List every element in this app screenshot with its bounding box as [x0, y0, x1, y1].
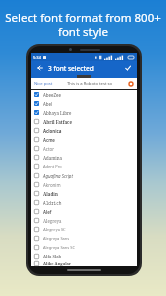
staticText: Alegreya SC — [43, 227, 66, 232]
staticText: Alef — [43, 209, 52, 215]
button[interactable]: AbeeZee — [31, 90, 137, 99]
staticText: Aclonica — [43, 128, 62, 134]
button[interactable]: Abhaya Libre — [31, 108, 137, 117]
staticText: Select font format from 800+ font style — [4, 10, 162, 39]
button[interactable]: Done — [123, 63, 133, 73]
button[interactable]: Alegreya — [31, 216, 137, 225]
button[interactable]: Aldrich — [31, 198, 137, 207]
staticText: Alegreya Sans SC — [43, 245, 75, 250]
staticText: This is a Roboto test so — [67, 81, 113, 87]
staticText: Abel — [43, 101, 53, 107]
staticText: 3 font selected — [48, 64, 94, 73]
staticText: Acme — [43, 137, 55, 143]
staticText: Alegreya — [43, 218, 62, 224]
staticText: Actor — [43, 146, 54, 152]
button[interactable]: Copy font — [127, 80, 134, 87]
staticText: Aladin — [43, 191, 58, 197]
button[interactable]: Abril Fatface — [31, 117, 137, 126]
button[interactable]: Akronim — [31, 180, 137, 189]
staticText: Adent Pro — [43, 164, 62, 169]
button[interactable]: Alegreya Sans SC — [31, 243, 137, 252]
button[interactable]: Adamina — [31, 153, 137, 162]
staticText: 5:34 — [33, 55, 41, 60]
button[interactable]: Abel — [31, 99, 137, 108]
staticText: Alike Angular — [43, 261, 72, 266]
button[interactable]: Actor — [31, 144, 137, 153]
button[interactable]: Adent Pro — [31, 162, 137, 171]
staticText: Abril Fatface — [43, 119, 72, 125]
button[interactable]: Alef — [31, 207, 137, 216]
staticText: Alegreya Sans — [43, 236, 70, 241]
staticText: Nice post — [34, 81, 53, 87]
staticText: Akronim — [43, 182, 61, 188]
button[interactable]: Alegreya Sans — [31, 234, 137, 243]
staticText: Abhaya Libre — [43, 110, 72, 116]
button[interactable]: Back — [35, 63, 45, 73]
button[interactable]: Aclonica — [31, 126, 137, 135]
staticText: AbeeZee — [43, 92, 61, 98]
button[interactable]: Alike Angular — [31, 261, 137, 266]
button[interactable]: Aguafina Script — [31, 171, 137, 180]
staticText: Alfa Slab — [43, 254, 62, 259]
staticText: Aguafina Script — [43, 173, 73, 179]
staticText: Adamina — [43, 155, 63, 161]
button[interactable]: Acme — [31, 135, 137, 144]
button[interactable]: Alfa Slab — [31, 252, 137, 261]
button[interactable]: Aladin — [31, 189, 137, 198]
button[interactable]: Alegreya SC — [31, 225, 137, 234]
staticText: Aldrich — [43, 200, 62, 206]
